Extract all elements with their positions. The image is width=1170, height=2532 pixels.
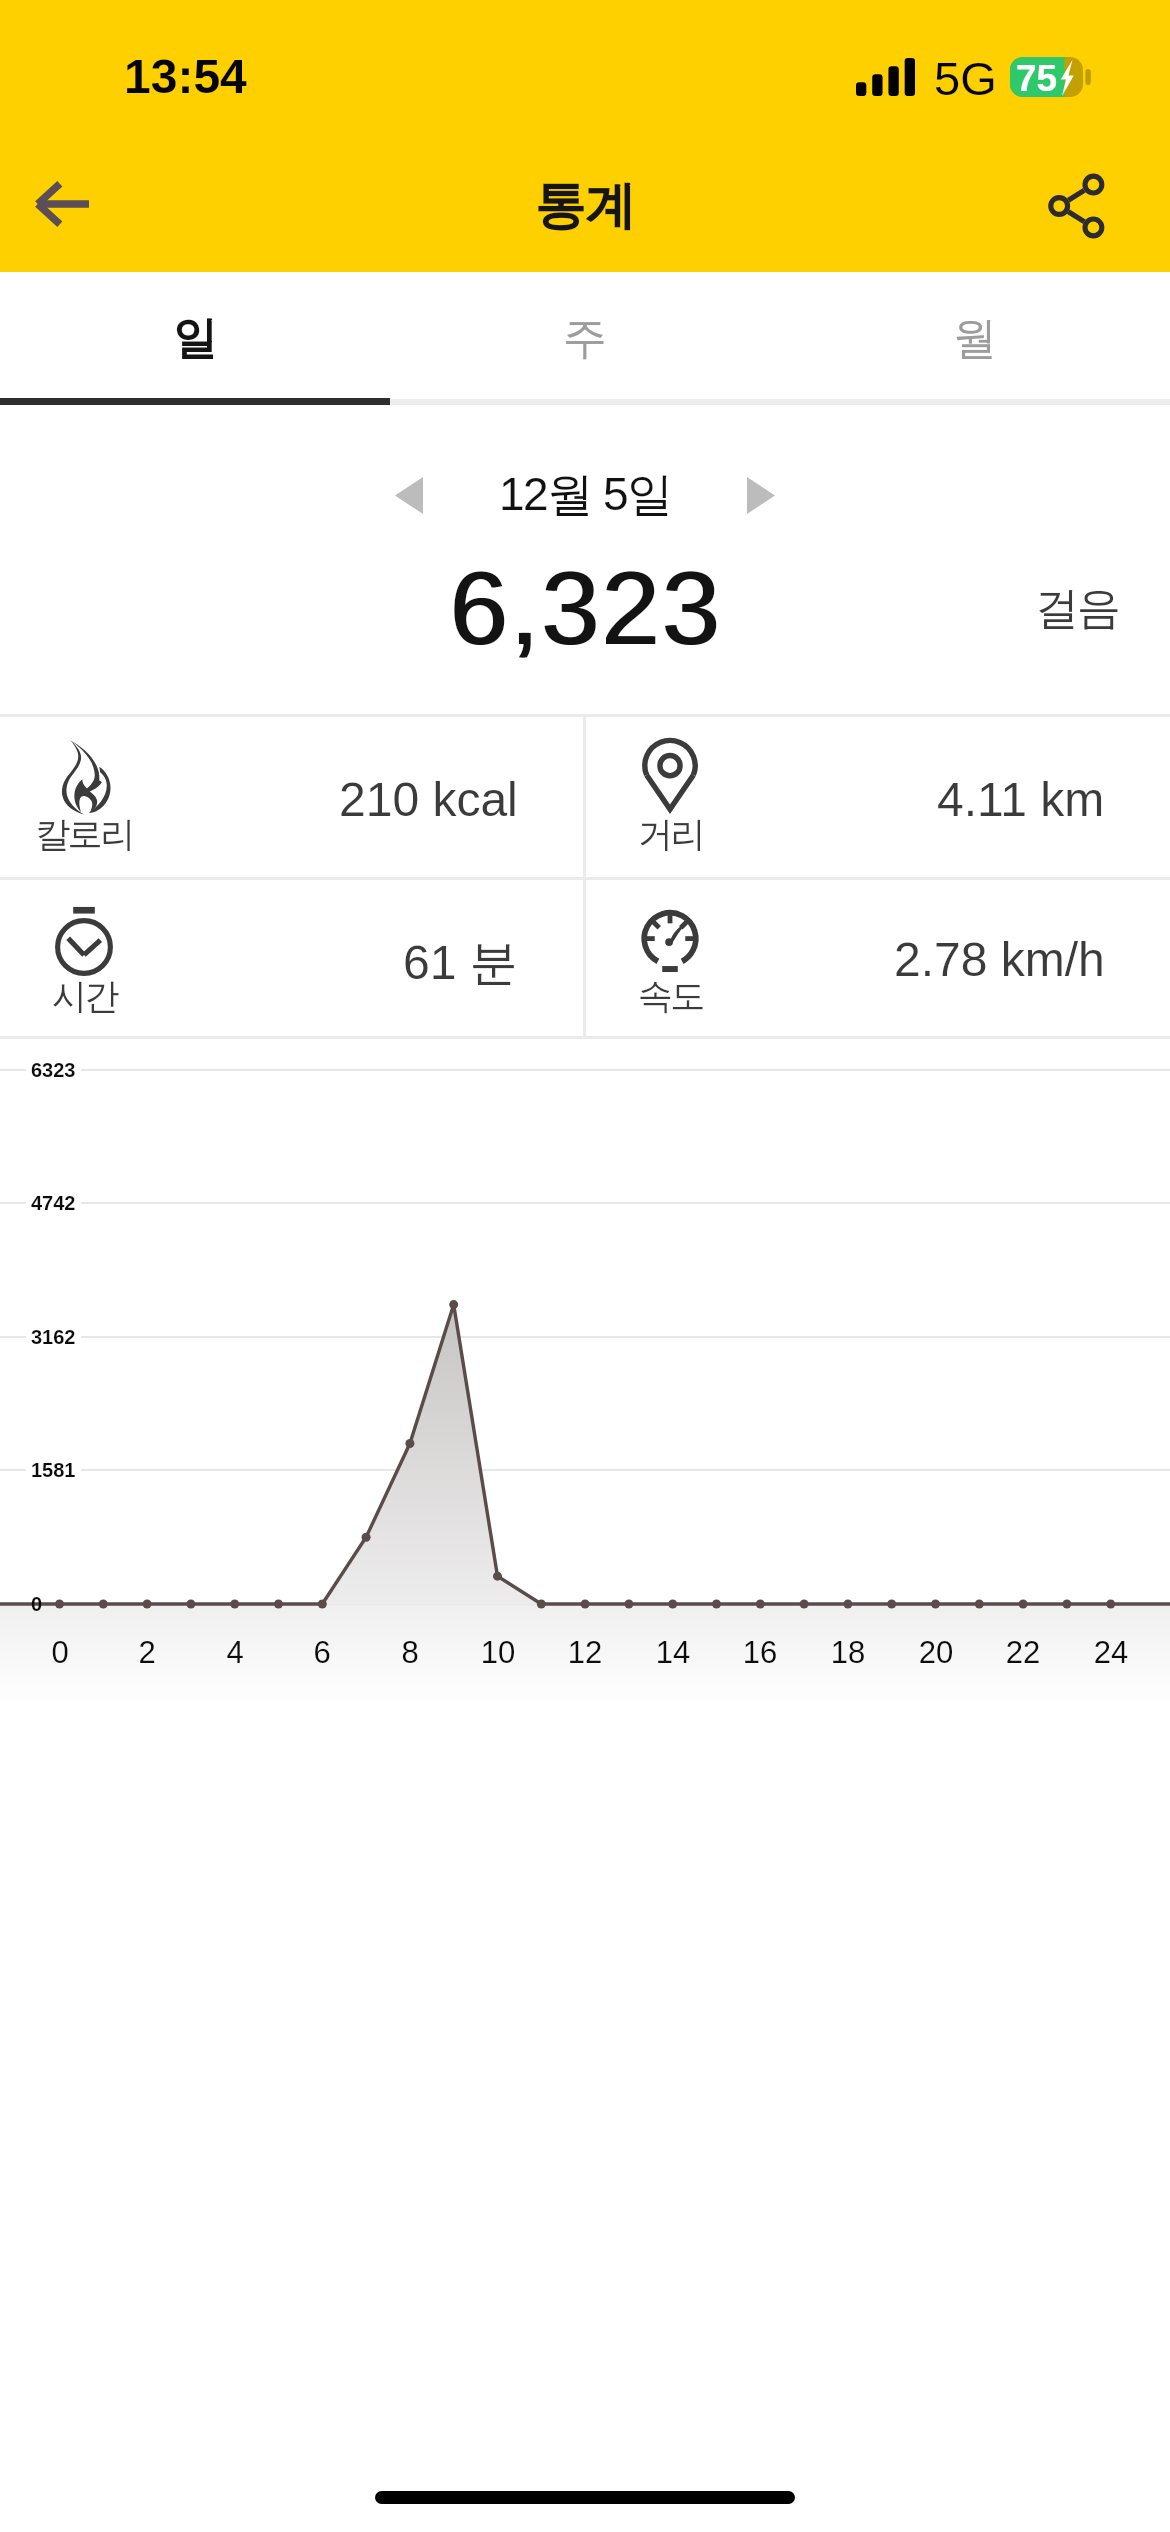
button[interactable]: 월 [780, 272, 1170, 399]
staticText: 4 [195, 1635, 275, 1670]
staticText: 4742 [31, 1192, 76, 1214]
button[interactable]: 주 [390, 272, 780, 399]
button[interactable]: 시간 [0, 880, 583, 1036]
staticText: 2.78 km/h [894, 933, 1105, 987]
staticText: 24 [1071, 1635, 1151, 1670]
staticText: 시간 [52, 974, 117, 1018]
staticText: 칼로리 [35, 812, 133, 856]
button[interactable]: Share [1026, 156, 1126, 256]
staticText: 주 [563, 311, 607, 366]
staticText: 13:54 [124, 50, 247, 104]
button[interactable]: Next day [719, 457, 803, 533]
staticText: 75 [1016, 58, 1058, 99]
staticText: 210 kcal [339, 773, 518, 827]
staticText: 0 [31, 1593, 43, 1615]
staticText: 6323 [31, 1059, 76, 1081]
button[interactable]: 일 [0, 272, 390, 399]
staticText: 6,323 [449, 550, 722, 666]
staticText: 6 [282, 1635, 362, 1670]
button[interactable]: 칼로리 [0, 717, 583, 877]
staticText: 20 [896, 1635, 976, 1670]
staticText: 0 [20, 1635, 100, 1670]
staticText: 10 [458, 1635, 538, 1670]
staticText: 4.11 km [937, 773, 1105, 827]
staticText: 6,323 [451, 550, 724, 666]
staticText: 걸음 [1036, 581, 1120, 636]
staticText: 1581 [31, 1459, 76, 1481]
staticText: 16 [720, 1635, 800, 1670]
button[interactable]: 거리 [586, 717, 1170, 877]
staticText: 통계 [535, 174, 635, 238]
staticText: 12월 5일 [499, 466, 672, 524]
button[interactable]: Back [12, 154, 112, 254]
staticText: 18 [808, 1635, 888, 1670]
staticText: 12 [545, 1635, 625, 1670]
staticText: 61 분 [403, 933, 518, 993]
staticText: 22 [983, 1635, 1063, 1670]
staticText: 3162 [31, 1326, 76, 1348]
staticText: 일 [173, 311, 217, 366]
staticText: 2 [107, 1635, 187, 1670]
staticText: 14 [633, 1635, 713, 1670]
staticText: 5G [934, 52, 997, 105]
staticText: 월 [953, 311, 997, 366]
button[interactable]: 속도 [586, 880, 1170, 1036]
button[interactable]: Previous day [367, 457, 451, 533]
staticText: 거리 [638, 812, 703, 856]
staticText: 8 [370, 1635, 450, 1670]
staticText: 속도 [638, 974, 703, 1018]
